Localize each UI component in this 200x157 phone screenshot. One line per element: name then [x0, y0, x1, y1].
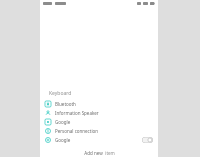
button[interactable]: Item icon — [40, 108, 158, 117]
button[interactable]: Item icon — [40, 126, 158, 135]
staticText: Add new — [84, 150, 103, 156]
other: Item icon — [45, 119, 51, 125]
button[interactable]: Item icon — [40, 135, 158, 144]
button[interactable]: Item icon — [40, 99, 158, 108]
other: Item icon — [45, 101, 51, 107]
staticText: Information Speaker — [55, 110, 153, 116]
button[interactable]: Add new — [84, 150, 115, 156]
staticText: item — [105, 150, 115, 156]
staticText: Keyboard — [49, 90, 72, 97]
button[interactable]: Toggle — [142, 137, 153, 143]
other: Item icon — [45, 137, 51, 143]
button[interactable]: Item icon — [40, 117, 158, 126]
staticText: Personal connection — [55, 128, 153, 134]
staticText: Google — [55, 119, 153, 125]
other: Item icon — [45, 110, 51, 116]
staticText: Google — [55, 137, 142, 143]
other: Item icon — [45, 128, 51, 134]
staticText: Bluetooth — [55, 101, 153, 107]
